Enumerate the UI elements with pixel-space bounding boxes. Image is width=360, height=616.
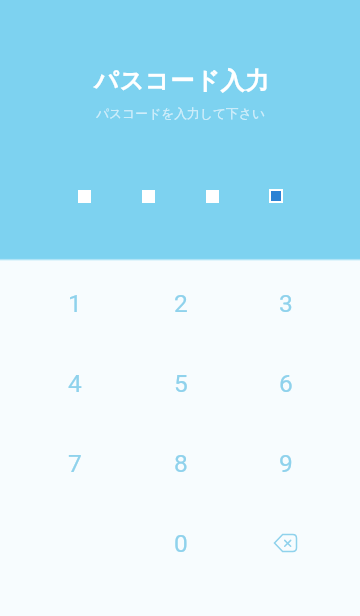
staticText: 3 — [279, 289, 293, 318]
button[interactable]: 5 — [128, 343, 233, 423]
staticText: 4 — [68, 369, 82, 398]
staticText: 5 — [174, 369, 188, 398]
staticText: 1 — [68, 289, 82, 318]
staticText: 6 — [279, 369, 293, 398]
button[interactable]: 1 — [22, 263, 128, 343]
button[interactable]: 9 — [233, 423, 338, 503]
staticText: 7 — [68, 449, 82, 478]
button[interactable]: 7 — [22, 423, 128, 503]
staticText: パスコードを入力して下さい — [96, 106, 266, 122]
button[interactable]: 4 — [22, 343, 128, 423]
button[interactable]: Backspace — [233, 503, 338, 583]
button[interactable]: 8 — [128, 423, 233, 503]
button[interactable]: 3 — [233, 263, 338, 343]
staticText: 2 — [174, 289, 188, 318]
button[interactable]: 0 — [128, 503, 233, 583]
button[interactable]: 6 — [233, 343, 338, 423]
staticText: 0 — [174, 529, 188, 558]
staticText: パスコード入力 — [94, 66, 271, 96]
staticText: 8 — [174, 449, 188, 478]
button[interactable]: 2 — [128, 263, 233, 343]
staticText: 9 — [279, 449, 293, 478]
